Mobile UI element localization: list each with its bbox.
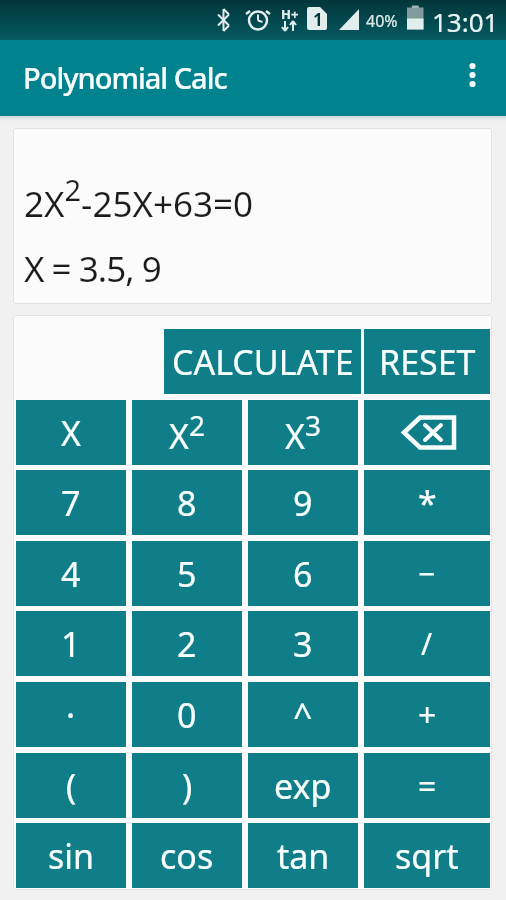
staticText: − [418,553,436,594]
staticText: 8 [177,480,197,526]
staticText: H+ [281,5,299,23]
staticText: 13:01 [432,4,499,39]
staticText: 1 [313,8,323,31]
staticText: RESET [379,339,476,385]
staticText: 9 [293,480,313,526]
staticText: 2 [177,621,197,667]
button[interactable]: ) [132,753,242,818]
button[interactable]: 9 [248,470,358,535]
button[interactable]: 0 [132,682,242,747]
button[interactable]: 1 [16,611,126,676]
staticText: ^ [293,692,313,738]
staticText: tan [277,833,330,879]
button[interactable]: − [364,541,490,606]
staticText: 40% [366,10,398,32]
staticText: = [418,764,437,808]
button[interactable]: 8 [132,470,242,535]
button[interactable]: 3 [248,611,358,676]
button[interactable]: + [364,682,490,747]
staticText: 4 [61,551,81,597]
staticText: 7 [61,480,81,526]
button[interactable]: / [364,611,490,676]
staticText: 1 [61,621,81,667]
button[interactable]: 7 [16,470,126,535]
staticText: + [418,693,437,737]
staticText: · [66,692,76,738]
staticText: cos [160,833,214,879]
button[interactable]: tan [248,823,358,888]
staticText: 0 [177,692,197,738]
button[interactable]: sin [16,823,126,888]
button[interactable]: 5 [132,541,242,606]
button[interactable]: X2 [132,400,242,465]
staticText: X3 [285,406,321,459]
button[interactable]: X3 [248,400,358,465]
staticText: / [421,623,433,664]
staticText: ) [182,763,193,809]
staticText: ( [66,763,77,809]
button[interactable]: * [364,470,490,535]
button[interactable]: X [16,400,126,465]
staticText: X2 [169,406,205,459]
button[interactable]: 6 [248,541,358,606]
button[interactable]: 2 [132,611,242,676]
button[interactable]: sqrt [364,823,490,888]
staticText: exp [274,763,332,809]
button[interactable] [364,400,490,465]
button[interactable]: 4 [16,541,126,606]
button[interactable] [452,50,494,102]
staticText: sin [48,833,95,879]
staticText: sqrt [395,833,459,879]
button[interactable]: exp [248,753,358,818]
button[interactable]: = [364,753,490,818]
staticText: 6 [293,551,313,597]
button[interactable]: ^ [248,682,358,747]
staticText: 2X2-25X+63=0 [24,170,254,227]
button[interactable]: RESET [364,329,490,394]
button[interactable]: cos [132,823,242,888]
button[interactable]: ( [16,753,126,818]
button[interactable]: · [16,682,126,747]
staticText: X [61,410,81,456]
staticText: Polynomial Calc [23,58,227,97]
staticText: 5 [177,551,197,597]
staticText: X = 3.5, 9 [24,245,161,293]
staticText: 3 [293,621,313,667]
staticText: CALCULATE [172,339,354,385]
button[interactable]: CALCULATE [164,329,361,394]
staticText: * [418,480,437,526]
